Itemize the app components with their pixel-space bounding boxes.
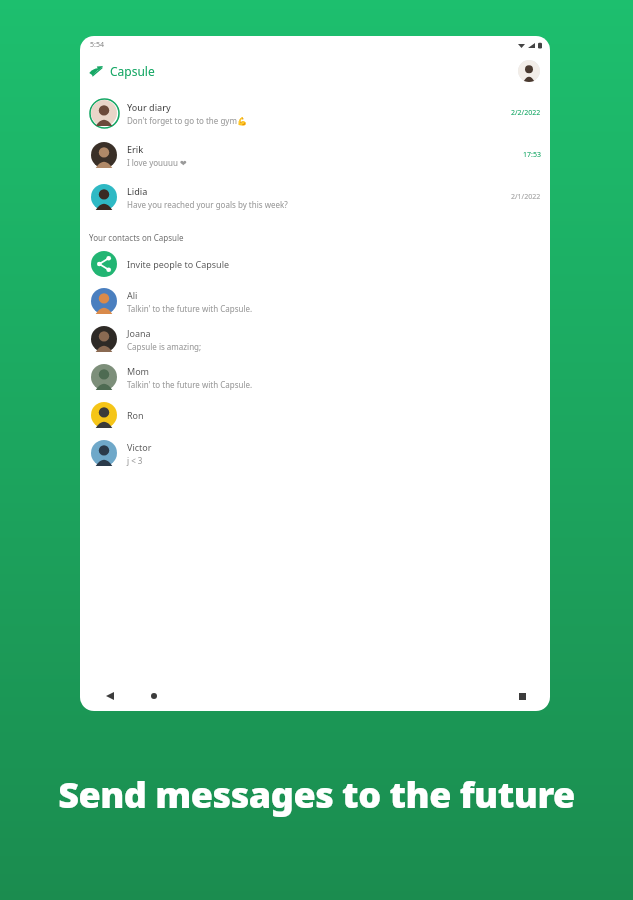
staticText: I love youuuu ❤️ (127, 157, 187, 168)
button[interactable]: Home (144, 686, 164, 706)
staticText: 17:53 (523, 150, 541, 160)
staticText: Ron (127, 409, 144, 421)
staticText: Erik (127, 143, 144, 155)
button[interactable]: Joana (80, 320, 550, 358)
staticText: Don't forget to go to the gym💪 (127, 115, 247, 126)
button[interactable]: Back (100, 686, 120, 706)
staticText: Your diary (127, 101, 171, 113)
button[interactable]: Erik (80, 134, 550, 176)
button[interactable]: Lidia (80, 176, 550, 218)
button[interactable]: Profile (518, 60, 540, 82)
staticText: Your contacts on Capsule (89, 232, 184, 243)
staticText: Send messages to the future (58, 770, 575, 819)
staticText: j < 3 (127, 455, 143, 466)
staticText: Talkin' to the future with Capsule. (127, 379, 253, 390)
staticText: Joana (127, 327, 151, 339)
button[interactable]: Your diary (80, 92, 550, 134)
button[interactable]: Recent apps (512, 686, 532, 706)
staticText: Mom (127, 365, 150, 377)
staticText: Capsule is amazing; (127, 341, 202, 352)
staticText: Lidia (127, 185, 148, 197)
staticText: 2/1/2022 (511, 192, 541, 202)
staticText: Invite people to Capsule (127, 258, 230, 270)
button[interactable]: Mom (80, 358, 550, 396)
staticText: Ali (127, 289, 138, 301)
button[interactable]: Ali (80, 282, 550, 320)
staticText: Victor (127, 441, 152, 453)
staticText: 5:54 (90, 40, 104, 50)
button[interactable]: Invite people to Capsule (80, 246, 550, 282)
staticText: Have you reached your goals by this week… (127, 199, 288, 210)
staticText: 2/2/2022 (511, 108, 541, 118)
button[interactable]: Ron (80, 396, 550, 434)
button[interactable]: Victor (80, 434, 550, 472)
staticText: Capsule (110, 63, 155, 79)
staticText: Talkin' to the future with Capsule. (127, 303, 253, 314)
